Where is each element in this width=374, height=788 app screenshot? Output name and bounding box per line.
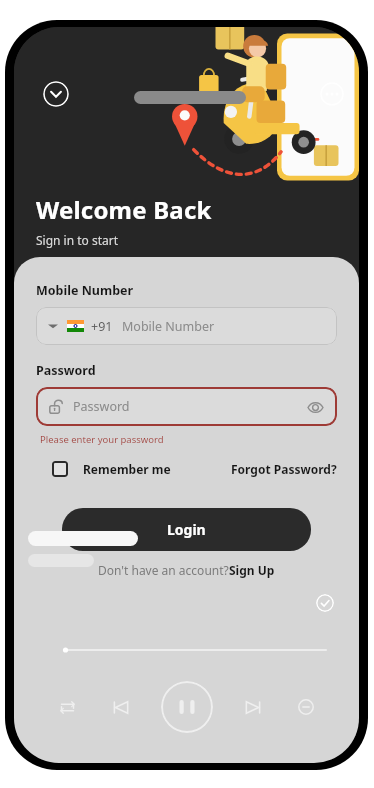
button[interactable]: Remove — [293, 694, 319, 720]
button[interactable]: Forgot Password? — [231, 461, 337, 477]
staticText: Remember me — [83, 461, 171, 477]
button[interactable]: Repeat — [54, 694, 80, 720]
button[interactable]: +91 — [36, 307, 337, 345]
staticText: Login — [167, 520, 206, 539]
button[interactable]: Confirm — [316, 594, 334, 612]
staticText: Please enter your password — [40, 433, 164, 446]
button[interactable]: Show password — [305, 397, 325, 417]
button[interactable]: Collapse — [43, 81, 69, 107]
button[interactable]: Sign Up — [229, 562, 275, 578]
button[interactable]: Remember me — [52, 461, 171, 477]
staticText: Password — [73, 398, 130, 415]
staticText: Sign Up — [229, 562, 275, 578]
button[interactable]: Previous — [107, 694, 133, 720]
button[interactable]: Login — [62, 508, 311, 551]
staticText: Mobile Number — [122, 318, 215, 335]
staticText: Don't have an account? — [98, 562, 229, 578]
staticText: Password — [36, 362, 96, 379]
button[interactable]: Password — [36, 387, 337, 426]
button[interactable]: Next — [240, 694, 266, 720]
staticText: Welcome Back — [36, 193, 212, 226]
button[interactable]: Pause — [161, 681, 213, 733]
staticText: Forgot Password? — [231, 461, 337, 477]
staticText: +91 — [91, 318, 113, 335]
staticText: Mobile Number — [36, 282, 134, 299]
staticText: Sign in to start — [36, 232, 119, 248]
